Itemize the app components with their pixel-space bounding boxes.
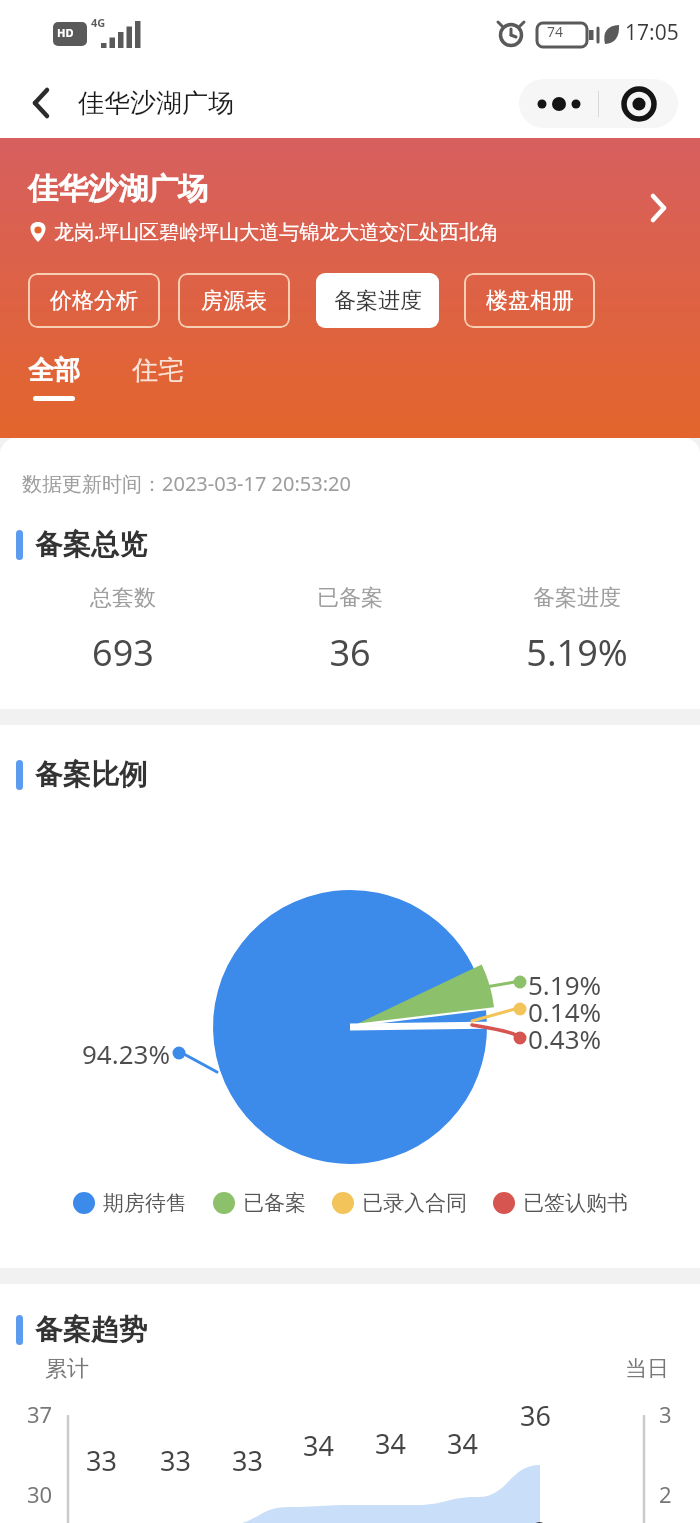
staticText: 已录入合同	[362, 1190, 467, 1216]
staticText: 备案进度	[533, 584, 621, 612]
staticText: 备案总览	[35, 527, 147, 562]
staticText: 74	[547, 22, 564, 41]
staticText: 总套数	[90, 584, 156, 612]
staticText: 36	[329, 628, 371, 677]
staticText: 5.19%	[528, 967, 602, 1002]
staticText: 备案趋势	[35, 1312, 147, 1347]
button[interactable]: Close	[599, 79, 678, 128]
staticText: 备案进度	[334, 287, 422, 315]
staticText: 34	[303, 1427, 334, 1464]
staticText: 36	[520, 1397, 551, 1434]
button[interactable]: 全部	[28, 354, 80, 401]
staticText: 佳华沙湖广场	[28, 170, 208, 208]
staticText: 房源表	[201, 287, 267, 315]
staticText: 已备案	[317, 584, 383, 612]
staticText: 累计	[45, 1355, 89, 1383]
staticText: 3	[659, 1399, 672, 1429]
staticText: 已签认购书	[523, 1190, 628, 1216]
button[interactable]: Details	[638, 188, 678, 228]
staticText: 0.14%	[528, 994, 602, 1029]
button[interactable]: 备案进度	[316, 273, 439, 328]
staticText: 30	[27, 1479, 53, 1509]
button[interactable]: More	[519, 79, 598, 128]
staticText: 佳华沙湖广场	[78, 87, 234, 120]
staticText: 价格分析	[50, 287, 138, 315]
staticText: 数据更新时间：2023-03-17 20:53:20	[22, 470, 351, 497]
staticText: 37	[27, 1399, 53, 1429]
staticText: 693	[92, 628, 154, 677]
staticText: 17:05	[625, 18, 679, 47]
button[interactable]: 价格分析	[28, 273, 160, 328]
staticText: 33	[86, 1442, 117, 1479]
staticText: 34	[447, 1425, 478, 1462]
staticText: 当日	[625, 1355, 669, 1383]
staticText: 全部	[28, 354, 80, 387]
staticText: 2	[532, 1513, 548, 1523]
staticText: 0.43%	[528, 1021, 602, 1056]
staticText: 期房待售	[103, 1190, 187, 1216]
staticText: 备案比例	[35, 757, 147, 792]
staticText: 33	[232, 1442, 263, 1479]
button[interactable]: Back	[18, 81, 62, 125]
button[interactable]: 楼盘相册	[464, 273, 595, 328]
button[interactable]: 房源表	[178, 273, 290, 328]
staticText: 龙岗.坪山区碧岭坪山大道与锦龙大道交汇处西北角	[54, 218, 500, 245]
staticText: 5.19%	[526, 628, 628, 677]
staticText: 4G	[91, 15, 106, 30]
staticText: 2	[659, 1479, 672, 1509]
staticText: 33	[160, 1442, 191, 1479]
staticText: 34	[375, 1425, 406, 1462]
button[interactable]: 住宅	[132, 354, 184, 387]
staticText: 已备案	[243, 1190, 306, 1216]
staticText: HD	[57, 25, 74, 40]
staticText: 楼盘相册	[486, 287, 574, 315]
staticText: 94.23%	[82, 1036, 171, 1071]
